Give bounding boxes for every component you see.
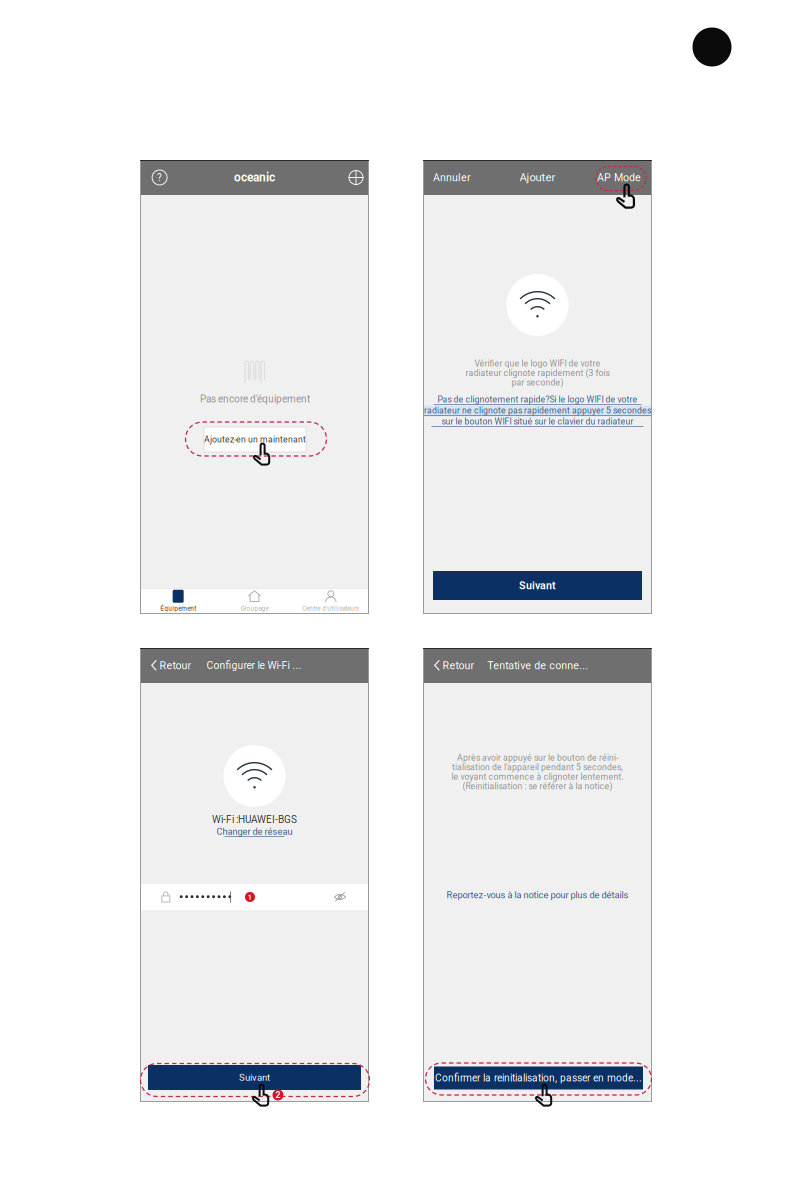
staticText: AP Mode [597,171,641,184]
button[interactable]: Suivant [433,571,642,600]
staticText: radiateur ne clignote pas rapidement app… [424,405,651,416]
staticText: (Reinitialisation : se référer à la noti… [462,781,612,791]
staticText: Tentative de conne... [487,659,588,672]
staticText: radiateur clignote rapidement (3 fois [465,368,609,378]
button[interactable]: Reportez-vous à la notice pour plus de d… [442,885,632,904]
button[interactable]: Retour [145,653,196,678]
staticText: Wi-Fi :HUAWEI-BGS [212,814,297,825]
staticText: Retour [442,659,474,672]
button[interactable]: Retour [428,653,479,678]
staticText: 2 [275,1090,280,1100]
staticText: Annuler [433,171,471,184]
staticText: Suivant [519,579,556,592]
button[interactable]: Équipement [140,588,216,614]
staticText: sur le bouton WIFI situé sur le clavier … [441,416,633,427]
staticText: Pas encore d'équipement [200,393,310,405]
button[interactable]: Ajoutez-en un maintenant [204,427,306,452]
staticText: Équipement [160,605,196,612]
staticText: Groupage [240,605,268,612]
staticText: Retour [159,659,191,672]
button[interactable]: Changer de réseau [216,826,292,837]
staticText: Ajoutez-en un maintenant [204,434,306,445]
staticText: Confirmer la reinitialisation, passer en… [435,1072,642,1084]
button[interactable]: Groupage [216,588,293,614]
staticText: Reportez-vous à la notice pour plus de d… [446,889,628,900]
staticText: par seconde) [511,377,563,388]
button[interactable]: AP Mode [591,165,647,190]
button[interactable]: Add [343,164,369,190]
staticText: tialisation de l'appareil pendant 5 seco… [452,762,623,772]
staticText: le voyant commence à clignoter lentement… [451,772,623,782]
button[interactable]: Suivant [148,1065,361,1090]
button[interactable]: Centre d'utilisateurs [293,588,369,614]
button[interactable]: Pas de clignotement rapide?Si le logo WI… [423,394,652,427]
staticText: 1 [247,892,252,902]
staticText: Configurer le Wi-Fi ... [206,659,301,671]
staticText: oceanic [234,170,275,185]
button[interactable]: Annuler [428,165,476,190]
staticText: Après avoir appuyé sur le bouton de réin… [457,753,618,763]
staticText: Suivant [239,1072,270,1083]
staticText: Pas de clignotement rapide?Si le logo WI… [437,394,637,405]
button[interactable]: Confirmer la reinitialisation, passer en… [434,1066,643,1089]
button[interactable]: Help [147,164,173,190]
staticText: Changer de réseau [216,826,292,837]
staticText: Vérifier que le logo WIFI de votre [474,358,600,369]
staticText: ? [157,172,162,183]
staticText: Ajouter [519,171,555,184]
staticText: Centre d'utilisateurs [302,605,359,612]
